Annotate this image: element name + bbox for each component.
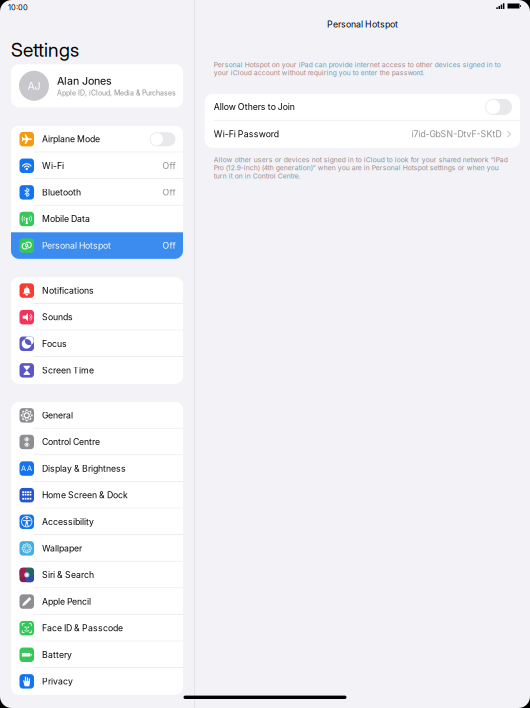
staticText: Off bbox=[162, 187, 175, 198]
button[interactable]: Wallpaper bbox=[11, 535, 183, 562]
staticText: Wallpaper bbox=[42, 543, 82, 554]
staticText: Settings bbox=[11, 38, 79, 61]
button[interactable]: Allow Others to Join bbox=[205, 94, 520, 120]
staticText: AA bbox=[21, 464, 33, 473]
staticText: Accessibility bbox=[42, 516, 94, 527]
button[interactable]: Home Screen & Dock bbox=[11, 482, 183, 508]
button[interactable]: Control Centre bbox=[11, 429, 183, 455]
staticText: Personal Hotspot bbox=[327, 19, 398, 30]
staticText: Sounds bbox=[42, 312, 73, 322]
button[interactable]: Apple Pencil bbox=[11, 588, 183, 615]
staticText: Wi-Fi Password bbox=[214, 129, 279, 139]
button[interactable]: Airplane Mode bbox=[11, 126, 183, 152]
button[interactable]: Mobile Data bbox=[11, 206, 183, 232]
button[interactable]: Notifications bbox=[11, 277, 183, 304]
staticText: General bbox=[42, 410, 73, 421]
staticText: Apple ID, iCloud, Media & Purchases bbox=[57, 89, 176, 97]
staticText: i7id-GbSN-DtvF-SKtD bbox=[411, 129, 501, 139]
staticText: Privacy bbox=[42, 676, 73, 687]
button[interactable]: AA bbox=[11, 455, 183, 482]
button[interactable]: Battery bbox=[11, 641, 183, 668]
staticText: Screen Time bbox=[42, 365, 94, 376]
staticText: Wi-Fi bbox=[42, 160, 64, 171]
button[interactable]: Accessibility bbox=[11, 508, 183, 535]
button[interactable]: Bluetooth bbox=[11, 179, 183, 206]
staticText: Home Screen & Dock bbox=[42, 490, 128, 500]
staticText: Allow other users or devices not signed … bbox=[214, 156, 508, 180]
staticText: Display & Brightness bbox=[42, 463, 126, 474]
button[interactable]: Privacy bbox=[11, 668, 183, 695]
staticText: Mobile Data bbox=[42, 214, 90, 224]
staticText: AJ bbox=[27, 79, 40, 92]
staticText: Apple Pencil bbox=[42, 596, 91, 607]
staticText: Face ID & Passcode bbox=[42, 623, 123, 633]
button[interactable]: General bbox=[11, 402, 183, 429]
button[interactable]: Personal Hotspot bbox=[11, 232, 183, 259]
button[interactable]: Face ID & Passcode bbox=[11, 615, 183, 641]
button[interactable]: Siri & Search bbox=[11, 562, 183, 588]
staticText: Battery bbox=[42, 649, 72, 660]
button[interactable]: Screen Time bbox=[11, 357, 183, 384]
staticText: Notifications bbox=[42, 285, 94, 296]
staticText: Bluetooth bbox=[42, 187, 81, 198]
button[interactable]: Wi-Fi Password bbox=[205, 121, 520, 148]
staticText: Control Centre bbox=[42, 437, 100, 447]
staticText: Siri & Search bbox=[42, 570, 94, 580]
button[interactable]: Wi-Fi bbox=[11, 152, 183, 179]
button[interactable]: AJ bbox=[11, 64, 183, 107]
staticText: Personal Hotspot bbox=[42, 240, 111, 251]
staticText: Off bbox=[162, 240, 175, 251]
staticText: Focus bbox=[42, 338, 67, 349]
button[interactable]: Sounds bbox=[11, 304, 183, 330]
staticText: Airplane Mode bbox=[42, 134, 100, 144]
staticText: Personal Hotspot on your iPad can provid… bbox=[214, 61, 501, 77]
staticText: Allow Others to Join bbox=[214, 102, 295, 112]
staticText: Off bbox=[162, 160, 175, 171]
button[interactable]: Focus bbox=[11, 330, 183, 357]
staticText: Alan Jones bbox=[57, 74, 112, 87]
staticText: 10:00 bbox=[8, 3, 28, 12]
